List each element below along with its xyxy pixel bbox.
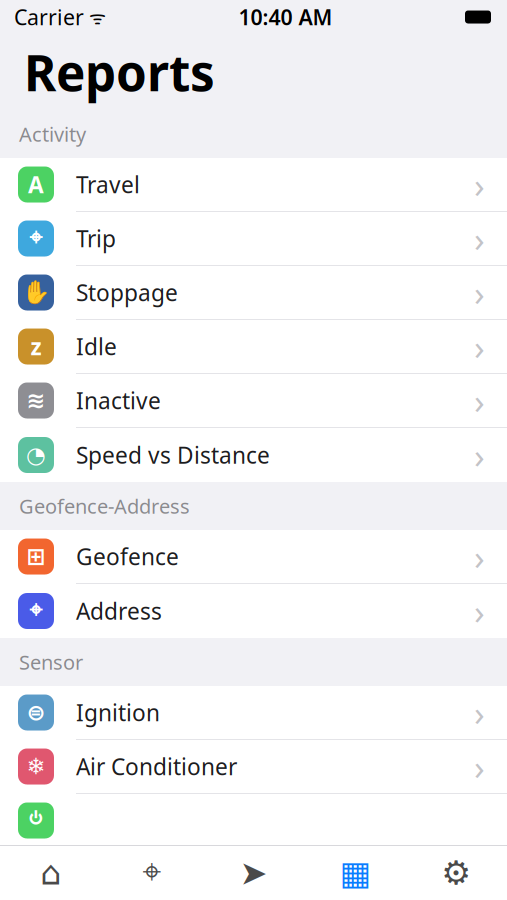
- staticText: Trip: [76, 223, 116, 253]
- button[interactable]: Home: [0, 846, 101, 900]
- staticText: Idle: [76, 331, 117, 361]
- staticText: ᯤ: [84, 5, 106, 29]
- button[interactable]: Places: [101, 846, 203, 900]
- staticText: ❄: [26, 754, 45, 779]
- staticText: Air Conditioner: [76, 751, 237, 781]
- staticText: ▦: [339, 854, 370, 892]
- staticText: ➤: [239, 854, 267, 892]
- staticText: ⌖: [29, 227, 42, 249]
- button[interactable]: Settings: [406, 846, 507, 900]
- staticText: Reports: [24, 39, 215, 105]
- staticText: ›: [474, 432, 485, 478]
- button[interactable]: ❄: [0, 740, 507, 794]
- button[interactable]: ⌖: [0, 212, 507, 266]
- button[interactable]: ⊜: [0, 686, 507, 740]
- staticText: ›: [474, 269, 485, 315]
- staticText: ⚙: [441, 854, 471, 892]
- staticText: ›: [474, 323, 485, 369]
- staticText: Geofence: [76, 541, 179, 571]
- staticText: ⌂: [40, 854, 61, 892]
- staticText: Activity: [19, 121, 86, 147]
- staticText: Geofence-Address: [19, 493, 190, 519]
- staticText: Inactive: [76, 385, 161, 415]
- button[interactable]: A: [0, 158, 507, 212]
- button[interactable]: ⊞: [0, 530, 507, 584]
- staticText: Ignition: [76, 697, 160, 727]
- button[interactable]: Reports: [304, 846, 406, 900]
- staticText: Stoppage: [76, 277, 178, 307]
- staticText: ◔: [26, 442, 46, 468]
- button[interactable]: Navigate: [203, 846, 304, 900]
- staticText: Speed vs Distance: [76, 440, 270, 470]
- button[interactable]: ◔: [0, 428, 507, 482]
- staticText: ›: [474, 689, 485, 735]
- button[interactable]: ⌖: [0, 584, 507, 638]
- button[interactable]: ✋: [0, 266, 507, 320]
- staticText: Sensor: [19, 649, 83, 675]
- staticText: Travel: [76, 169, 140, 199]
- staticText: ›: [474, 533, 485, 579]
- staticText: ›: [474, 743, 485, 789]
- staticText: Carrier: [14, 3, 84, 31]
- button[interactable]: ≋: [0, 374, 507, 428]
- staticText: ✋: [22, 280, 50, 305]
- staticText: ›: [474, 377, 485, 423]
- staticText: ⊞: [26, 544, 45, 569]
- staticText: ⊜: [26, 700, 45, 725]
- staticText: ⌖: [29, 600, 42, 622]
- staticText: ⏻: [29, 806, 43, 834]
- staticText: ⌖: [143, 857, 162, 889]
- staticText: A: [28, 169, 44, 199]
- staticText: 10:40 AM: [238, 3, 332, 31]
- button[interactable]: z: [0, 320, 507, 374]
- staticText: ›: [474, 215, 485, 261]
- staticText: ›: [474, 161, 485, 207]
- staticText: z: [30, 331, 41, 361]
- staticText: Address: [76, 596, 162, 626]
- staticText: ›: [474, 588, 485, 634]
- staticText: ≋: [26, 388, 45, 413]
